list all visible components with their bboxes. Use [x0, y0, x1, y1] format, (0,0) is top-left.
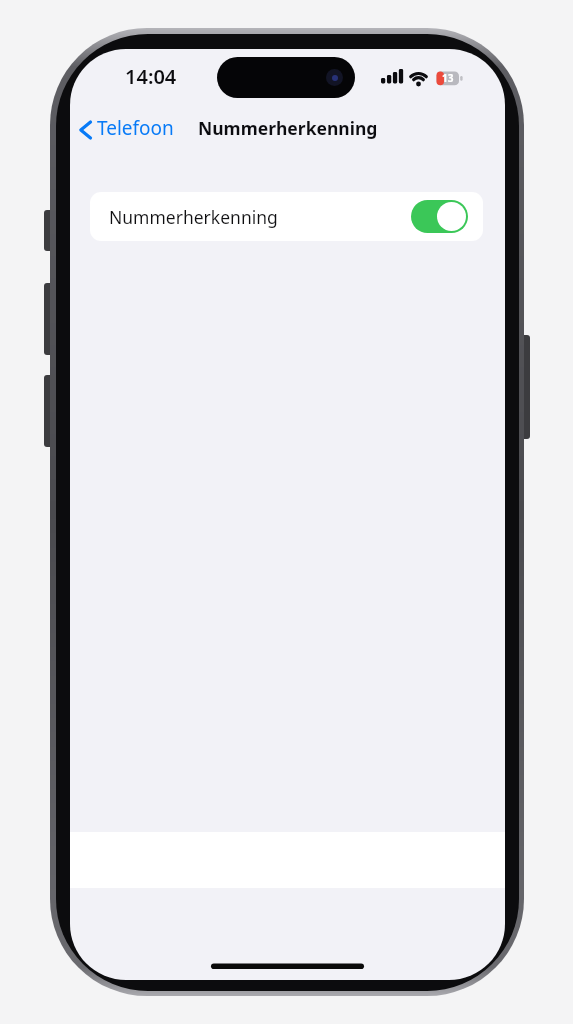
staticText: Nummerherkenning [198, 116, 378, 140]
button[interactable]: Telefoon [97, 115, 207, 141]
staticText: 14:04 [125, 63, 177, 90]
button[interactable] [411, 200, 468, 233]
staticText: 13 [442, 71, 454, 85]
staticText: Nummerherkenning [109, 205, 278, 229]
button[interactable]: Nummerherkenning [90, 192, 483, 241]
staticText: Telefoon [97, 115, 174, 141]
